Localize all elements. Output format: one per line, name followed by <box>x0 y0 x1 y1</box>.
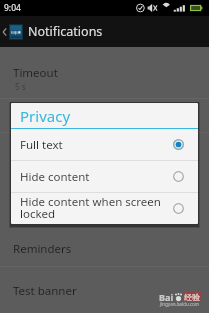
staticText: Test banner <box>13 283 77 299</box>
staticText: Full text <box>15 120 45 131</box>
staticText: Privacy <box>20 106 71 126</box>
button[interactable]: Timeout <box>0 61 209 98</box>
staticText: 经验 <box>184 292 200 302</box>
button[interactable]: Navigate up <box>0 16 209 47</box>
staticText: Bai <box>159 291 174 303</box>
staticText: 9:04 <box>4 2 21 14</box>
staticText: Full text <box>20 137 63 153</box>
staticText: Notifications <box>28 23 103 40</box>
staticText: locked <box>20 206 56 221</box>
staticText: Hide content when screen <box>20 194 161 210</box>
staticText: Hide content <box>20 169 90 185</box>
staticText: Reminders <box>13 241 72 257</box>
button[interactable]: Reminders <box>0 237 209 263</box>
button[interactable]: Full text <box>11 129 198 160</box>
staticText: Timeout <box>13 65 58 81</box>
button[interactable]: Hide content when screen <box>11 193 198 224</box>
button[interactable]: Test banner <box>0 279 209 305</box>
button[interactable]: Hide content <box>11 161 198 192</box>
staticText: jingyan.baidu.com <box>160 301 199 307</box>
button[interactable]: Privacy <box>0 100 209 137</box>
staticText: Privacy <box>13 104 52 120</box>
staticText: 5 s <box>15 81 26 92</box>
